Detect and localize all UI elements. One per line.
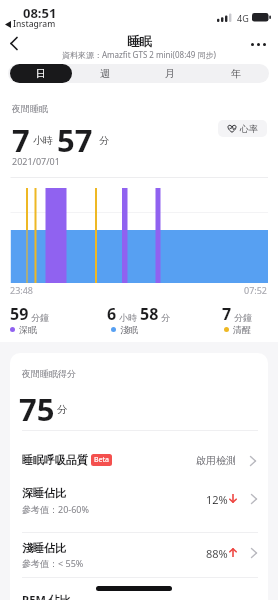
staticText: 週: [100, 67, 110, 80]
staticText: 4G: [237, 12, 249, 24]
button[interactable]: 月: [150, 64, 190, 83]
button[interactable]: 心率: [218, 120, 267, 137]
staticText: 資料來源：Amazfit GTS 2 mini(08:49 同步): [62, 49, 216, 60]
staticText: 分鐘: [232, 311, 253, 323]
staticText: 6: [107, 303, 117, 325]
staticText: 夜間睡眠: [12, 103, 48, 114]
staticText: 清醒: [233, 324, 251, 335]
staticText: 分鐘: [29, 311, 50, 323]
staticText: 57: [57, 119, 93, 161]
staticText: 月: [165, 67, 175, 80]
staticText: 08:51: [23, 4, 57, 22]
staticText: 睡眠呼吸品質: [22, 453, 88, 467]
staticText: 深眠: [19, 324, 37, 335]
staticText: 分: [57, 403, 68, 416]
button[interactable]: [4, 34, 24, 52]
button[interactable]: [10, 534, 268, 580]
staticText: 心率: [240, 123, 258, 134]
staticText: 淺眠: [120, 324, 138, 335]
button[interactable]: 週: [85, 64, 125, 83]
button[interactable]: 日: [10, 64, 72, 83]
staticText: 07:52: [244, 284, 268, 296]
staticText: 小時: [33, 134, 53, 147]
staticText: 日: [36, 67, 46, 80]
staticText: 深睡佔比: [22, 486, 66, 500]
staticText: 夜間睡眠得分: [22, 368, 76, 379]
staticText: 參考值：< 55%: [22, 557, 84, 569]
staticText: 啟用檢測: [196, 454, 236, 467]
button[interactable]: 睡眠呼吸品質: [22, 453, 112, 467]
staticText: 分: [99, 134, 109, 147]
staticText: 75: [19, 388, 55, 430]
staticText: Beta: [94, 455, 109, 465]
staticText: 23:48: [10, 284, 34, 296]
staticText: 88%: [206, 546, 228, 561]
button[interactable]: 年: [216, 64, 256, 83]
staticText: 2021/07/01: [12, 155, 60, 167]
staticText: REM 佔比: [22, 592, 71, 600]
staticText: 7: [12, 119, 30, 161]
staticText: 59: [10, 303, 29, 325]
staticText: 分: [159, 311, 171, 323]
button[interactable]: [251, 40, 271, 48]
staticText: Instagram: [13, 18, 56, 30]
staticText: 小時: [117, 311, 140, 323]
staticText: 58: [140, 303, 159, 325]
staticText: 7: [222, 303, 232, 325]
staticText: 睡眠: [127, 34, 152, 50]
staticText: 參考值：20-60%: [22, 503, 89, 515]
staticText: 淺睡佔比: [22, 541, 66, 555]
staticText: 年: [231, 67, 241, 80]
staticText: 12%: [206, 492, 228, 507]
button[interactable]: [10, 478, 268, 530]
